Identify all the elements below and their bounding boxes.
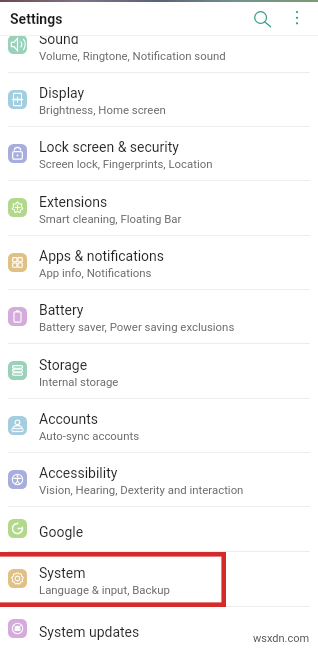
staticText: Screen lock, Fingerprints, Location xyxy=(39,157,213,170)
button[interactable]: System xyxy=(0,552,318,607)
staticText: System xyxy=(39,565,86,581)
staticText: Sound xyxy=(39,31,79,47)
staticText: Brightness, Home screen xyxy=(39,103,166,116)
staticText: Accounts xyxy=(39,411,99,427)
staticText: Battery xyxy=(39,302,84,318)
staticText: Smart cleaning, Floating Bar xyxy=(39,212,182,225)
button[interactable]: Sound xyxy=(0,18,318,73)
staticText: Display xyxy=(39,85,85,101)
staticText: Auto-sync accounts xyxy=(39,429,140,442)
staticText: Apps & notifications xyxy=(39,248,165,264)
button[interactable]: More options xyxy=(287,3,309,25)
button[interactable]: Display xyxy=(0,73,318,127)
staticText: System updates xyxy=(39,624,140,640)
button[interactable]: Storage xyxy=(0,344,318,399)
staticText: Volume, Ringtone, Notification sound xyxy=(39,49,226,62)
button[interactable]: Accounts xyxy=(0,399,318,453)
staticText: Storage xyxy=(39,357,88,373)
staticText: Settings xyxy=(10,11,63,27)
button[interactable]: Battery xyxy=(0,290,318,344)
button[interactable]: Google xyxy=(0,507,318,552)
button[interactable]: Accessibility xyxy=(0,453,318,507)
staticText: Accessibility xyxy=(39,465,118,481)
staticText: wsxdn.com xyxy=(253,632,310,645)
button[interactable]: Extensions xyxy=(0,181,318,236)
staticText: Battery saver, Power saving exclusions xyxy=(39,320,235,333)
staticText: Vision, Hearing, Dexterity and interacti… xyxy=(39,483,244,496)
staticText: Google xyxy=(39,524,84,540)
button[interactable]: Apps & notifications xyxy=(0,236,318,290)
staticText: Lock screen & security xyxy=(39,139,179,155)
staticText: App info, Notifications xyxy=(39,266,152,279)
staticText: Language & input, Backup xyxy=(39,583,170,596)
button[interactable]: Lock screen & security xyxy=(0,127,318,181)
button[interactable]: Search xyxy=(247,3,275,31)
button[interactable]: System updates xyxy=(0,607,318,650)
staticText: Extensions xyxy=(39,194,108,210)
staticText: Internal storage xyxy=(39,375,119,388)
